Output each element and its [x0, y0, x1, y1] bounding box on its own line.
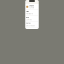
staticText: Docs ready: [26, 25, 35, 27]
staticText: Bob: [26, 16, 29, 18]
staticText: Dave: [26, 28, 30, 30]
staticText: Inbox: [29, 5, 34, 7]
staticText: Carol: [26, 22, 30, 24]
button[interactable]: Carol: [25, 22, 39, 27]
button[interactable]: Dave: [25, 28, 39, 33]
button[interactable]: Alice: [25, 10, 39, 15]
staticText: Hey there: [26, 13, 33, 15]
button[interactable]: Bob: [25, 16, 39, 21]
staticText: Lunch?: [26, 19, 32, 21]
staticText: 12 new: [29, 7, 34, 9]
staticText: Alice: [26, 10, 29, 12]
